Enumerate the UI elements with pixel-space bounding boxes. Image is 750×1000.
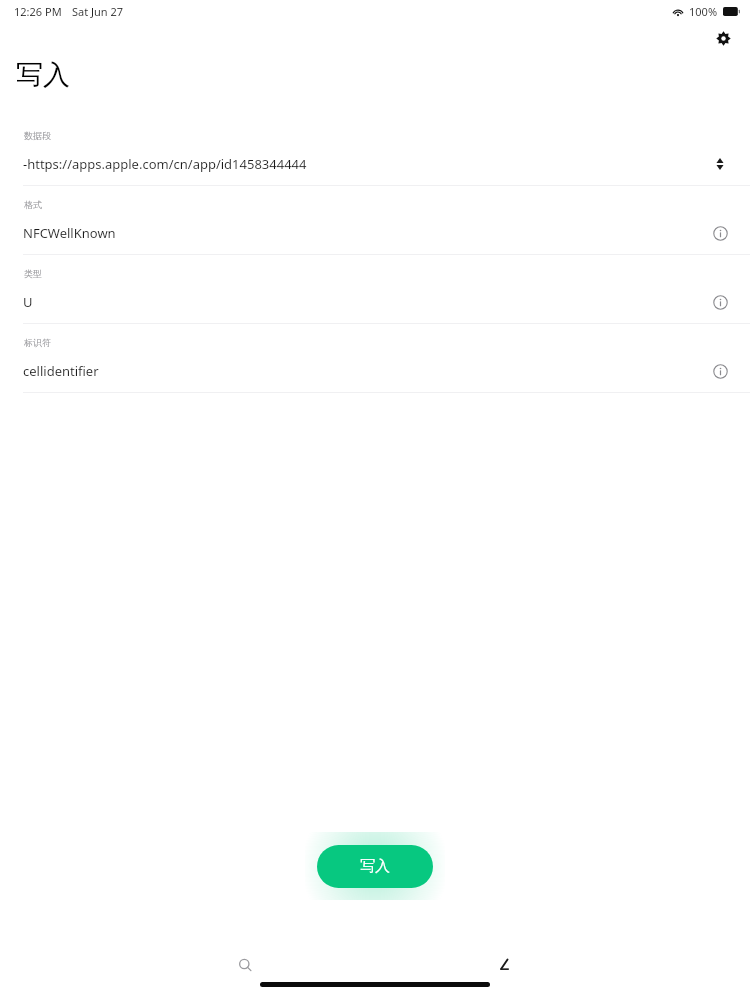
staticText: Sat Jun 27 (72, 4, 124, 19)
staticText: 100% (689, 4, 718, 19)
staticText: -https://apps.apple.com/cn/app/id1458344… (23, 155, 708, 173)
button[interactable]: Settings (708, 23, 738, 53)
staticText: NFCWellKnown (23, 224, 708, 242)
other: Identifier info (708, 359, 732, 383)
button[interactable]: Edit (490, 951, 518, 979)
button[interactable]: NFCWellKnown (0, 221, 750, 245)
staticText: 格式 (24, 199, 42, 210)
staticText: cellidentifier (23, 362, 708, 380)
staticText: 标识符 (24, 337, 51, 348)
button[interactable]: cellidentifier (0, 359, 750, 383)
other: Type info (708, 290, 732, 314)
button[interactable]: U (0, 290, 750, 314)
staticText: 写入 (360, 857, 390, 876)
button[interactable]: 写入 (317, 845, 433, 888)
staticText: 12:26 PM (14, 4, 62, 19)
staticText: 写入 (16, 58, 70, 92)
staticText: 类型 (24, 268, 42, 279)
other: Reorder (708, 152, 732, 176)
other: Format info (708, 221, 732, 245)
staticText: U (23, 293, 708, 311)
button[interactable]: Search (231, 951, 259, 979)
staticText: 数据段 (24, 130, 51, 141)
button[interactable]: -https://apps.apple.com/cn/app/id1458344… (0, 152, 750, 176)
